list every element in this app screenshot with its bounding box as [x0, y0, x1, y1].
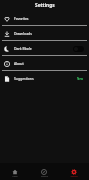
button[interactable]: About [0, 56, 89, 71]
staticText: Home [12, 175, 18, 178]
button[interactable]: Explore [29, 163, 59, 180]
staticText: Downloads [14, 31, 32, 36]
staticText: About [14, 61, 24, 66]
button[interactable]: Settings [59, 163, 89, 180]
staticText: Settings [35, 2, 55, 9]
button[interactable]: Dark Mode [0, 41, 89, 56]
staticText: Settings [70, 175, 78, 178]
button[interactable]: Suggestions [0, 71, 89, 86]
button[interactable]: Home [0, 163, 29, 180]
staticText: New [77, 77, 84, 81]
staticText: Explore [41, 175, 48, 178]
staticText: Suggestions [14, 76, 34, 81]
button[interactable]: Favorites [0, 11, 89, 26]
staticText: Favorites [14, 16, 29, 21]
button[interactable]: Downloads [0, 26, 89, 41]
staticText: Dark Mode [14, 46, 32, 51]
